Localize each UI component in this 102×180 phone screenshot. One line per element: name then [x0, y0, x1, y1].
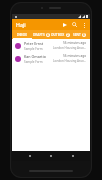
button[interactable]: SENT — [70, 30, 89, 39]
button[interactable]: Peter Ernst — [12, 39, 90, 52]
staticText: 56 minutes ago — [63, 54, 87, 58]
staticText: London Housing Asso… — [53, 46, 87, 50]
staticText: London Housing Asso… — [53, 59, 87, 63]
staticText: Peter Ernst — [24, 41, 44, 46]
button[interactable]: Back — [26, 152, 34, 160]
button[interactable]: Recent apps — [69, 152, 77, 160]
staticText: Kan Omartio — [24, 54, 46, 59]
staticText: 2 — [67, 33, 69, 37]
staticText: DRAFTS — [33, 33, 45, 37]
button[interactable]: INBOX — [13, 30, 32, 39]
button[interactable]: Search — [70, 20, 79, 29]
staticText: Sample Form — [24, 60, 43, 64]
button[interactable]: Send — [60, 20, 69, 29]
button[interactable]: OUTBOX — [51, 30, 70, 39]
staticText: Haji — [16, 21, 26, 28]
staticText: 8 — [83, 33, 85, 37]
staticText: OUTBOX — [51, 33, 65, 37]
staticText: INBOX — [17, 33, 28, 37]
button[interactable]: More options — [80, 21, 88, 29]
staticText: Sample Form — [24, 47, 43, 51]
button[interactable]: Kan Omartio — [12, 52, 90, 65]
staticText: 4 — [47, 33, 49, 37]
staticText: 56 minutes ago — [63, 41, 87, 45]
button[interactable]: Home — [47, 152, 55, 160]
button[interactable]: DRAFTS — [32, 30, 51, 39]
staticText: SENT — [73, 33, 81, 37]
